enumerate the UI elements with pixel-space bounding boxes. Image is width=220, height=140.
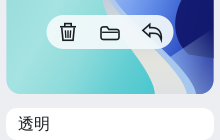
button[interactable]: Move to folder [89, 15, 131, 49]
button[interactable]: Delete [47, 15, 89, 49]
button[interactable]: Undo [131, 15, 173, 49]
staticText: 透明 [18, 114, 50, 134]
